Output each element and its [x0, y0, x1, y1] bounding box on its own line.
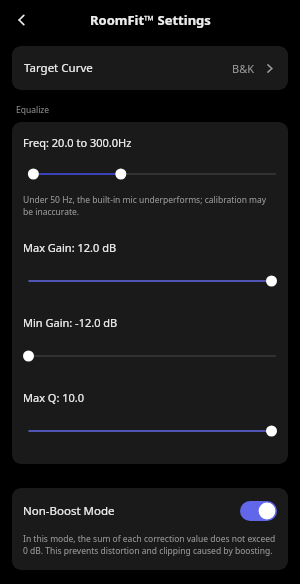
staticText: B&K [232, 61, 255, 76]
staticText: Max Q: 10.0 [23, 390, 85, 405]
staticText: RoomFit™ Settings [90, 11, 211, 29]
staticText: Equalize [16, 104, 50, 116]
staticText: Min Gain: -12.0 dB [23, 315, 118, 330]
button[interactable]: Slider [23, 271, 277, 291]
button[interactable]: Slider [23, 421, 277, 441]
staticText: Max Gain: 12.0 dB [23, 240, 117, 255]
button[interactable]: Non-Boost Mode toggle [240, 501, 277, 521]
staticText: Under 50 Hz, the built-in mic underperfo… [23, 194, 277, 218]
button[interactable]: Slider [23, 346, 277, 366]
button[interactable]: Target Curve [12, 46, 288, 90]
button[interactable]: Back [6, 4, 38, 36]
button[interactable]: Frequency range slider [23, 164, 277, 184]
staticText: Target Curve [24, 60, 93, 76]
staticText: Freq: 20.0 to 300.0Hz [23, 135, 132, 150]
staticText: In this mode, the sum of each correction… [23, 533, 277, 557]
staticText: Non-Boost Mode [23, 503, 115, 519]
